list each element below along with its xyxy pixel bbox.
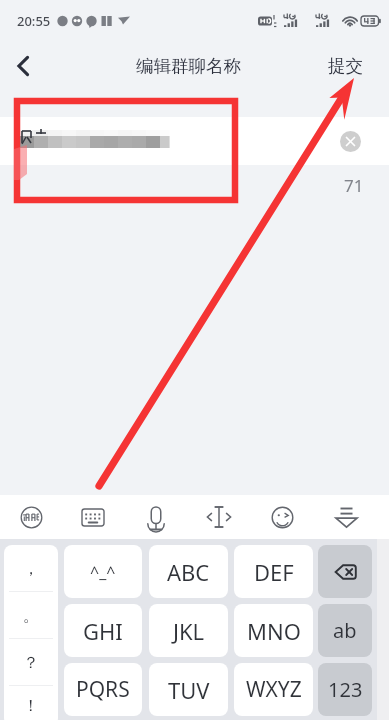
button[interactable]: PQRS bbox=[64, 663, 142, 716]
button[interactable]: ab bbox=[318, 604, 372, 657]
staticText: MNO bbox=[247, 616, 301, 646]
button[interactable]: Keyboard layout bbox=[69, 495, 117, 539]
button[interactable]: ！ bbox=[4, 686, 58, 720]
staticText: PQRS bbox=[76, 675, 130, 704]
staticText: ， bbox=[23, 559, 39, 579]
button[interactable]: Clear text bbox=[340, 131, 361, 152]
staticText: ！ bbox=[23, 696, 39, 716]
staticText: ^_^ bbox=[90, 561, 116, 583]
button[interactable]: 提交 bbox=[310, 42, 389, 90]
button[interactable]: JKL bbox=[149, 604, 228, 657]
button[interactable]: MNO bbox=[234, 604, 313, 657]
button[interactable]: Delete bbox=[318, 545, 372, 598]
button[interactable]: Hide keyboard bbox=[322, 495, 370, 539]
button[interactable]: TUV bbox=[149, 663, 228, 716]
button[interactable]: Move cursor bbox=[195, 495, 243, 539]
button[interactable]: ABC bbox=[149, 545, 228, 598]
button[interactable]: Input method bbox=[7, 495, 55, 539]
staticText: 编辑群聊名称 bbox=[136, 55, 241, 77]
button[interactable]: ^_^ bbox=[64, 545, 142, 598]
staticText: 71 bbox=[344, 174, 364, 197]
staticText: TUV bbox=[168, 675, 210, 705]
button[interactable]: WXYZ bbox=[234, 663, 313, 716]
button[interactable]: Voice input bbox=[132, 495, 180, 539]
button[interactable]: GHI bbox=[64, 604, 142, 657]
staticText: ABC bbox=[167, 557, 210, 587]
staticText: 20:55 bbox=[17, 12, 51, 30]
button[interactable]: ， bbox=[4, 545, 58, 592]
staticText: 123 bbox=[328, 676, 363, 703]
other: Delete bbox=[334, 564, 357, 580]
button[interactable]: DEF bbox=[234, 545, 313, 598]
button[interactable]: ？ bbox=[4, 639, 58, 686]
staticText: DEF bbox=[254, 557, 294, 587]
button[interactable]: Emoji bbox=[258, 495, 306, 539]
staticText: 。 bbox=[23, 606, 39, 626]
staticText: ？ bbox=[23, 653, 39, 673]
staticText: 提交 bbox=[328, 55, 363, 77]
staticText: ab bbox=[333, 617, 357, 644]
button[interactable]: 。 bbox=[4, 592, 58, 639]
staticText: WXYZ bbox=[246, 675, 302, 704]
button[interactable]: Back bbox=[0, 42, 46, 90]
staticText: JKL bbox=[173, 616, 205, 646]
button[interactable]: 123 bbox=[318, 663, 372, 716]
staticText: GHI bbox=[83, 616, 123, 646]
